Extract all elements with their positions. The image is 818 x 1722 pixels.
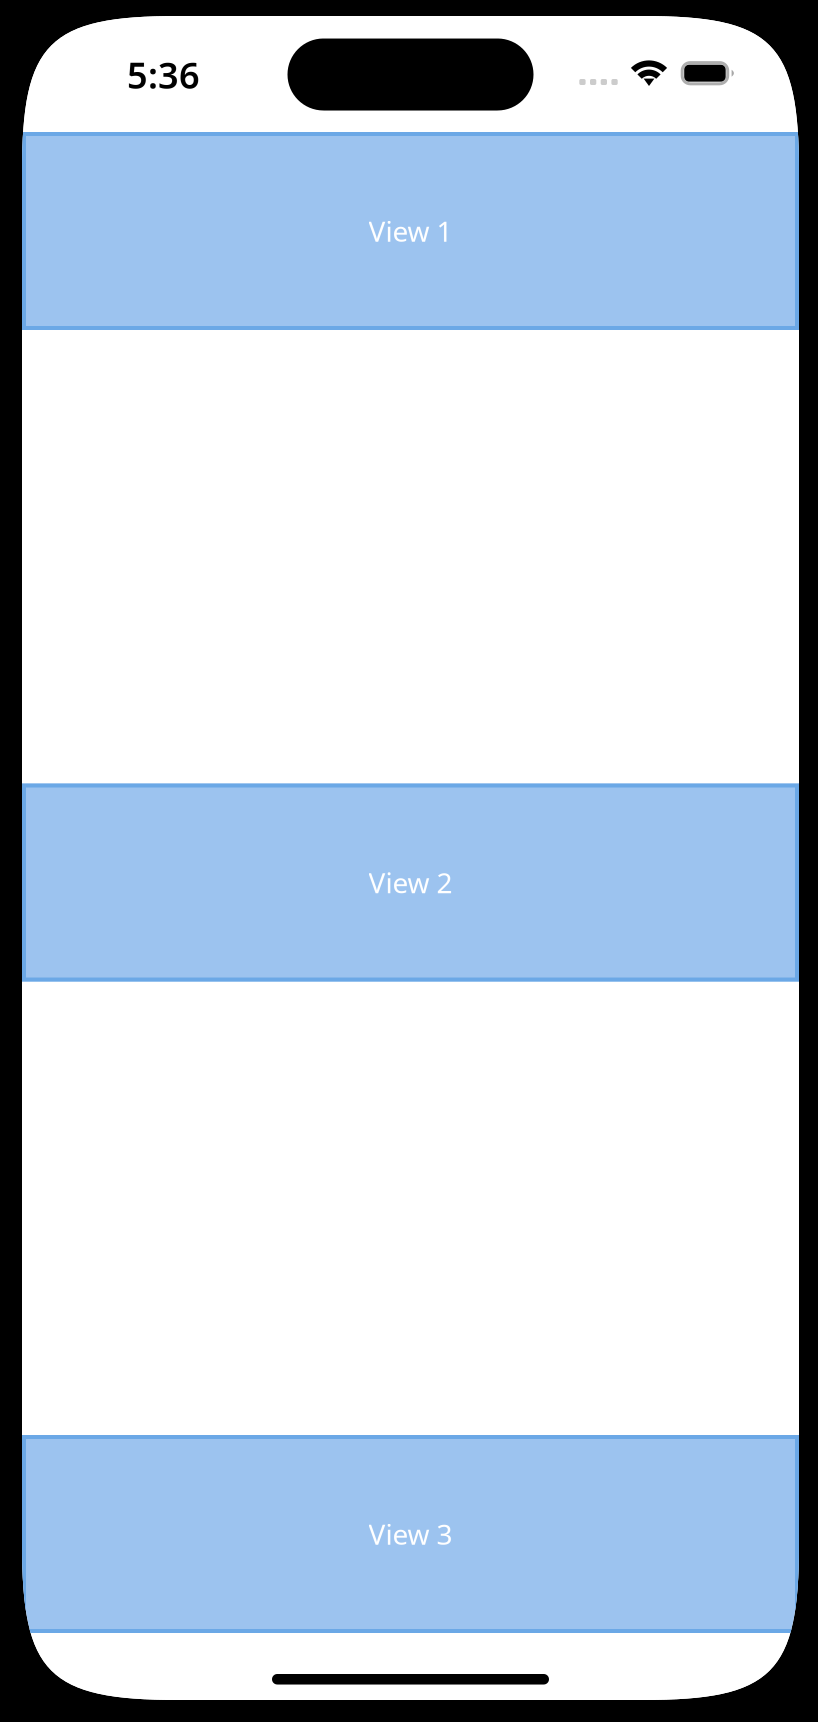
staticText: 5:36: [127, 51, 200, 99]
staticText: View 1: [368, 212, 452, 250]
staticText: View 2: [368, 864, 452, 901]
staticText: View 3: [368, 1515, 452, 1553]
